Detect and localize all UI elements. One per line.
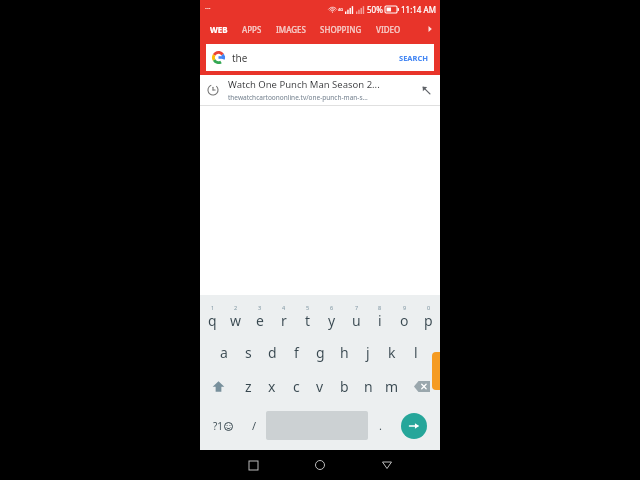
- button[interactable]: ?1: [204, 403, 242, 448]
- staticText: z: [245, 377, 252, 396]
- button[interactable]: 4: [272, 299, 296, 335]
- staticText: APPS: [242, 24, 262, 35]
- staticText: w: [230, 311, 242, 330]
- staticText: ···: [205, 4, 211, 14]
- staticText: j: [366, 343, 370, 362]
- staticText: r: [281, 311, 287, 330]
- button[interactable]: x: [260, 369, 284, 403]
- staticText: x: [268, 377, 276, 396]
- staticText: v: [316, 377, 324, 396]
- button[interactable]: j: [356, 335, 380, 369]
- staticText: WEB: [210, 24, 228, 35]
- button[interactable]: 5: [296, 299, 320, 335]
- staticText: .: [379, 418, 382, 433]
- button[interactable]: l: [404, 335, 428, 369]
- button[interactable]: APPS: [242, 18, 262, 40]
- button[interactable]: 7: [344, 299, 368, 335]
- button[interactable]: g: [308, 335, 332, 369]
- staticText: q: [208, 311, 217, 330]
- staticText: 4: [282, 304, 286, 311]
- staticText: l: [414, 343, 418, 362]
- button[interactable]: a: [212, 335, 236, 369]
- button[interactable]: Shift: [200, 369, 236, 403]
- staticText: f: [294, 343, 299, 362]
- staticText: t: [305, 311, 311, 330]
- staticText: 4G: [338, 7, 344, 12]
- staticText: ?1: [213, 419, 224, 433]
- button[interactable]: 3: [248, 299, 272, 335]
- staticText: b: [340, 377, 349, 396]
- staticText: 5: [306, 304, 310, 311]
- staticText: 8: [378, 304, 382, 311]
- button[interactable]: k: [380, 335, 404, 369]
- button[interactable]: 8: [368, 299, 392, 335]
- button[interactable]: d: [260, 335, 284, 369]
- button[interactable]: /: [242, 403, 266, 448]
- staticText: u: [352, 311, 361, 330]
- button[interactable]: z: [236, 369, 260, 403]
- staticText: h: [340, 343, 349, 362]
- button[interactable]: Home: [306, 451, 334, 479]
- button[interactable]: Go: [401, 413, 427, 439]
- button[interactable]: f: [284, 335, 308, 369]
- button[interactable]: v: [308, 369, 332, 403]
- staticText: VIDEO: [376, 24, 401, 35]
- staticText: 0: [427, 304, 431, 311]
- staticText: SHOPPING: [320, 24, 362, 35]
- staticText: 3: [258, 304, 262, 311]
- button[interactable]: Back: [373, 451, 401, 479]
- staticText: 9: [403, 304, 407, 311]
- staticText: k: [388, 343, 396, 362]
- button[interactable]: 0: [416, 299, 440, 335]
- staticText: s: [245, 343, 252, 362]
- staticText: Watch One Punch Man Season 2...: [228, 78, 380, 91]
- staticText: d: [268, 343, 277, 362]
- staticText: e: [256, 311, 264, 330]
- staticText: the: [232, 51, 248, 65]
- button[interactable]: s: [236, 335, 260, 369]
- staticText: 6: [330, 304, 334, 311]
- staticText: IMAGES: [276, 24, 306, 35]
- button[interactable]: m: [380, 369, 404, 403]
- staticText: p: [424, 311, 433, 330]
- button[interactable]: Backspace: [404, 369, 440, 403]
- staticText: a: [220, 343, 228, 362]
- staticText: 2: [234, 304, 238, 311]
- button[interactable]: IMAGES: [276, 18, 306, 40]
- button[interactable]: n: [356, 369, 380, 403]
- staticText: 1: [211, 304, 215, 311]
- button[interactable]: the: [212, 44, 428, 71]
- button[interactable]: 6: [320, 299, 344, 335]
- button[interactable]: More tabs: [424, 23, 436, 35]
- button[interactable]: Watch One Punch Man Season 2...: [200, 75, 440, 105]
- button[interactable]: SHOPPING: [320, 18, 362, 40]
- button[interactable]: 1: [200, 299, 224, 335]
- button[interactable]: 9: [392, 299, 416, 335]
- button[interactable]: Insert suggestion: [419, 83, 433, 97]
- button[interactable]: 2: [224, 299, 248, 335]
- button[interactable]: h: [332, 335, 356, 369]
- staticText: y: [328, 311, 336, 330]
- staticText: /: [252, 418, 257, 433]
- staticText: thewatchcartoononline.tv/one-punch-man-s…: [228, 93, 368, 102]
- button[interactable]: c: [284, 369, 308, 403]
- button[interactable]: SEARCH: [399, 53, 428, 63]
- button[interactable]: WEB: [210, 18, 228, 40]
- staticText: i: [378, 311, 382, 330]
- staticText: c: [293, 377, 300, 396]
- button[interactable]: VIDEO: [376, 18, 401, 40]
- staticText: 7: [355, 304, 359, 311]
- staticText: n: [364, 377, 373, 396]
- staticText: 11:14 AM: [401, 4, 436, 15]
- button[interactable]: b: [332, 369, 356, 403]
- button[interactable]: .: [368, 403, 392, 448]
- staticText: o: [400, 311, 409, 330]
- staticText: m: [385, 377, 399, 396]
- button[interactable]: Recents: [239, 451, 267, 479]
- staticText: g: [316, 343, 325, 362]
- staticText: 50%: [367, 4, 383, 15]
